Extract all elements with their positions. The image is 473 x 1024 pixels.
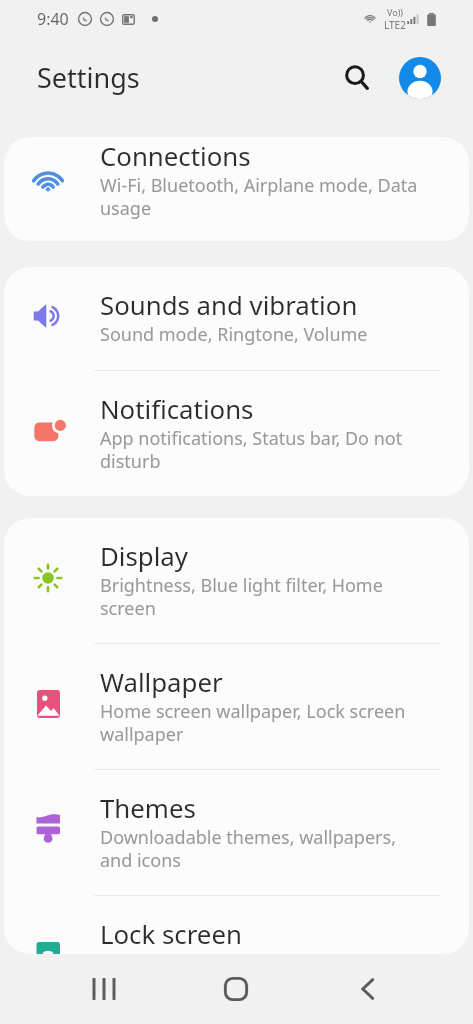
button[interactable]: Search (335, 56, 379, 100)
button[interactable]: Recents (72, 957, 136, 1021)
button[interactable]: Wallpaper (4, 644, 469, 769)
staticText: Settings (37, 59, 140, 96)
staticText: Wi-Fi, Bluetooth, Airplane mode, Data us… (100, 173, 429, 221)
staticText: Home screen wallpaper, Lock screen wallp… (100, 699, 429, 747)
button[interactable]: Back (336, 957, 400, 1021)
staticText: Vo)) (387, 6, 404, 18)
button[interactable]: Sounds and vibration (4, 267, 469, 370)
staticText: Display (100, 538, 188, 573)
button[interactable]: Lock screen (4, 896, 469, 954)
staticText: Brightness, Blue light filter, Home scre… (100, 573, 429, 621)
staticText: Sound mode, Ringtone, Volume (100, 322, 368, 347)
staticText: Sounds and vibration (100, 287, 358, 322)
staticText: Themes (100, 790, 196, 825)
staticText: Wallpaper (100, 664, 223, 699)
staticText: Lock screen (100, 916, 242, 951)
staticText: App notifications, Status bar, Do not di… (100, 426, 429, 474)
button[interactable]: Connections (4, 137, 469, 241)
staticText: LTE2 (384, 18, 406, 32)
button[interactable]: Themes (4, 770, 469, 895)
button[interactable]: Notifications (4, 371, 469, 496)
staticText: Downloadable themes, wallpapers, and ico… (100, 825, 429, 873)
button[interactable]: Display (4, 518, 469, 643)
staticText: Notifications (100, 391, 254, 426)
button[interactable]: Home (204, 957, 268, 1021)
staticText: 9:40 (37, 8, 69, 30)
button[interactable]: Account (399, 57, 441, 99)
staticText: Connections (100, 138, 251, 173)
